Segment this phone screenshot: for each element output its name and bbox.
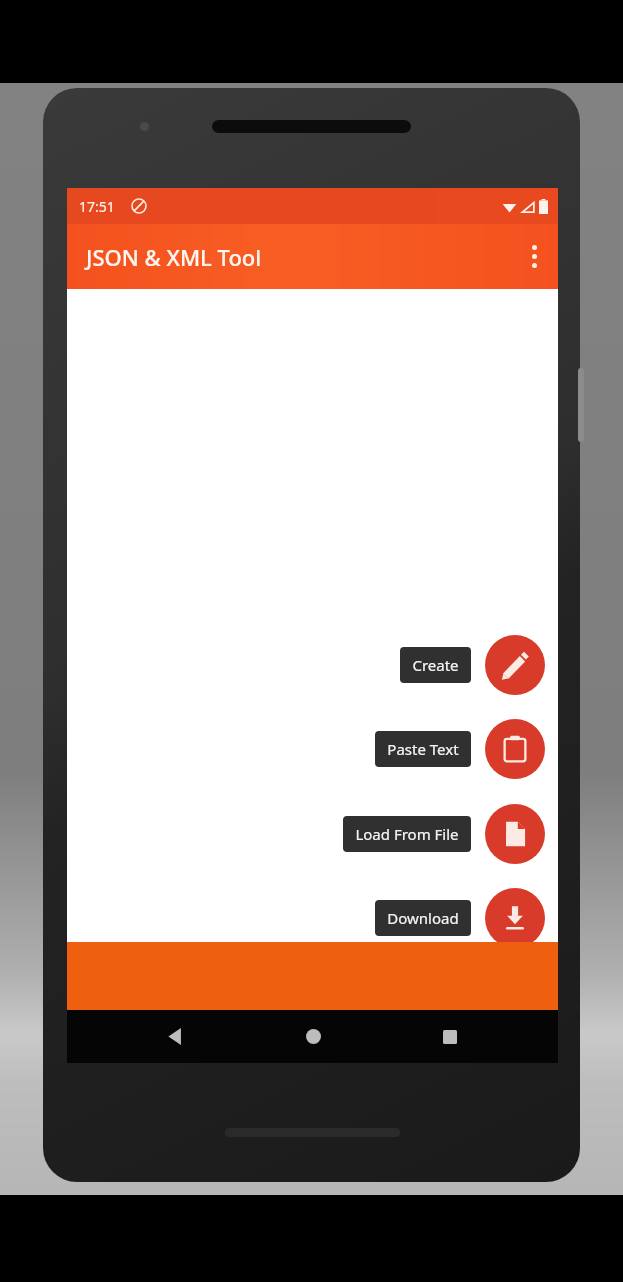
button[interactable]: Download [485, 888, 545, 948]
button[interactable]: More options [510, 224, 558, 289]
button[interactable]: Close menu [485, 973, 545, 1033]
button[interactable]: Load From File [485, 804, 545, 864]
button[interactable]: Create [400, 647, 471, 683]
button[interactable]: Load From File [343, 816, 471, 852]
staticText: Paste Text [387, 739, 459, 759]
button[interactable]: Download [375, 900, 471, 936]
staticText: Create [412, 655, 459, 675]
staticText: 17:51 [79, 197, 115, 216]
button[interactable]: Create [485, 635, 545, 695]
button[interactable]: Back [146, 1010, 204, 1063]
staticText: JSON & XML Tool [86, 242, 262, 272]
button[interactable]: Paste Text [485, 719, 545, 779]
button[interactable]: Paste Text [375, 731, 471, 767]
staticText: Download [387, 908, 459, 928]
button[interactable]: Recent apps [421, 1010, 479, 1063]
button[interactable]: Home [284, 1010, 342, 1063]
staticText: Load From File [355, 824, 459, 844]
